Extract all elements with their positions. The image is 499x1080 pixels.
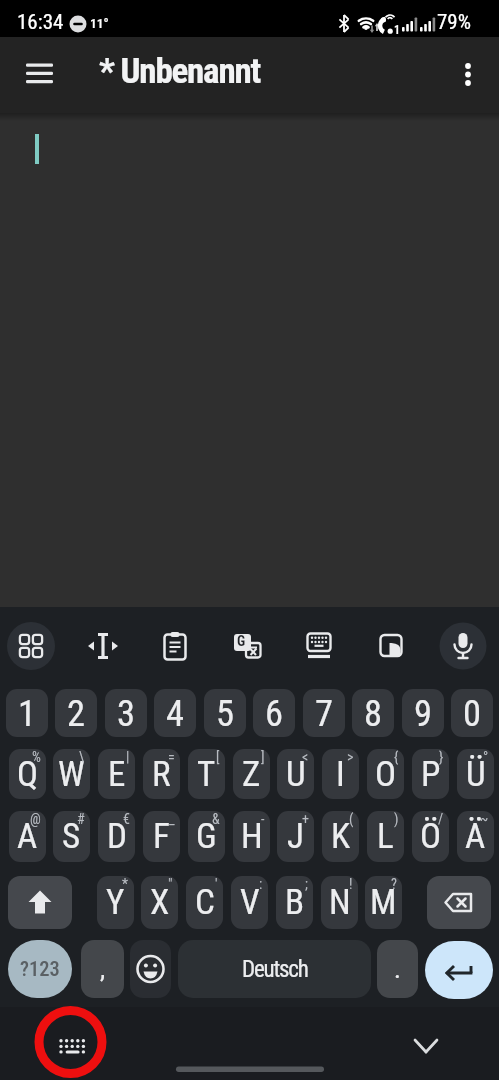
button[interactable]: R [143, 749, 180, 799]
button[interactable]: G [188, 811, 225, 862]
button[interactable] [291, 618, 347, 674]
button[interactable]: C [186, 876, 223, 929]
staticText: F [153, 816, 170, 857]
button[interactable]: B [276, 876, 313, 929]
button[interactable]: T [188, 749, 225, 799]
staticText: Q [17, 754, 39, 795]
button[interactable]: 0 [451, 689, 493, 737]
button[interactable] [14, 62, 64, 90]
button[interactable]: N [321, 876, 358, 929]
staticText: & [212, 811, 220, 827]
staticText: 16:34 [17, 10, 64, 35]
staticText: R [152, 754, 171, 795]
button[interactable]: E [98, 749, 135, 799]
staticText: H [241, 816, 263, 857]
staticText: > [347, 749, 354, 765]
button[interactable]: G [219, 618, 275, 674]
button[interactable]: 4 [154, 689, 196, 737]
staticText: G [196, 816, 217, 857]
staticText: 2 [67, 692, 86, 735]
button[interactable]: D [98, 811, 135, 862]
button[interactable]: 1 [6, 689, 48, 737]
button[interactable]: A [9, 811, 46, 862]
staticText: 79% [437, 10, 472, 35]
button[interactable] [3, 618, 59, 674]
button[interactable]: K [322, 811, 359, 862]
staticText: \ [79, 749, 85, 765]
button[interactable]: Ö [412, 811, 449, 862]
button[interactable]: F [143, 811, 180, 862]
button[interactable]: H [233, 811, 270, 862]
button[interactable] [75, 618, 131, 674]
staticText: , [100, 954, 106, 984]
button[interactable] [427, 876, 491, 929]
button[interactable]: 3 [105, 689, 147, 737]
button[interactable] [425, 941, 493, 999]
staticText: 1 [394, 23, 401, 37]
button[interactable] [8, 876, 72, 929]
staticText: / [438, 811, 444, 827]
staticText: Ü [466, 754, 486, 795]
button[interactable]: 9 [402, 689, 444, 737]
staticText: L [377, 816, 394, 857]
button[interactable] [398, 1018, 454, 1074]
button[interactable]: 8 [352, 689, 394, 737]
staticText: ~ [480, 811, 489, 827]
staticText: O [375, 754, 397, 795]
staticText: 9 [414, 692, 433, 735]
button[interactable]: , [81, 940, 124, 998]
staticText: 5 [216, 692, 235, 735]
button[interactable]: L [367, 811, 404, 862]
button[interactable]: 5 [204, 689, 246, 737]
button[interactable]: W [53, 749, 90, 799]
staticText: N [329, 882, 351, 923]
staticText: 3 [117, 692, 136, 735]
button[interactable]: I [322, 749, 359, 799]
button[interactable] [38, 1010, 104, 1076]
staticText: X [150, 882, 170, 923]
button[interactable] [435, 618, 491, 674]
button[interactable]: 2 [55, 689, 97, 737]
staticText: < [302, 749, 309, 765]
button[interactable]: X [141, 876, 178, 929]
button[interactable]: S [53, 811, 90, 862]
button[interactable]: Ä [457, 811, 494, 862]
button[interactable]: M [365, 876, 402, 929]
button[interactable]: . [377, 940, 418, 998]
staticText: ) [394, 811, 399, 827]
button[interactable]: Ü [457, 749, 494, 799]
staticText: # [77, 811, 85, 827]
button[interactable]: U [277, 749, 314, 799]
staticText: D [107, 816, 127, 857]
staticText: W [58, 754, 85, 795]
button[interactable]: Y [97, 876, 134, 929]
button[interactable]: Z [233, 749, 270, 799]
button[interactable] [363, 618, 419, 674]
button[interactable]: ?123 [8, 940, 72, 998]
button[interactable]: J [277, 811, 314, 862]
staticText: T [197, 754, 216, 795]
button[interactable] [147, 618, 203, 674]
button[interactable] [130, 940, 171, 998]
button[interactable]: P [412, 749, 449, 799]
staticText: 4 [166, 692, 185, 735]
staticText: 6 [265, 692, 284, 735]
button[interactable]: O [367, 749, 404, 799]
staticText: } [439, 749, 444, 765]
staticText: P [421, 754, 441, 795]
button[interactable]: 7 [303, 689, 345, 737]
button[interactable]: Q [9, 749, 46, 799]
staticText: ?123 [20, 957, 60, 981]
button[interactable]: 6 [253, 689, 295, 737]
staticText: ' [215, 876, 218, 892]
button[interactable]: V [231, 876, 268, 929]
staticText: ] [261, 749, 265, 765]
staticText: ° [483, 749, 489, 765]
button[interactable] [448, 59, 488, 99]
staticText: - [261, 811, 265, 827]
staticText: _ [169, 811, 175, 827]
button[interactable]: Deutsch [178, 940, 371, 998]
staticText: ! [349, 876, 353, 892]
button[interactable] [0, 113, 499, 607]
staticText: . [394, 954, 401, 984]
